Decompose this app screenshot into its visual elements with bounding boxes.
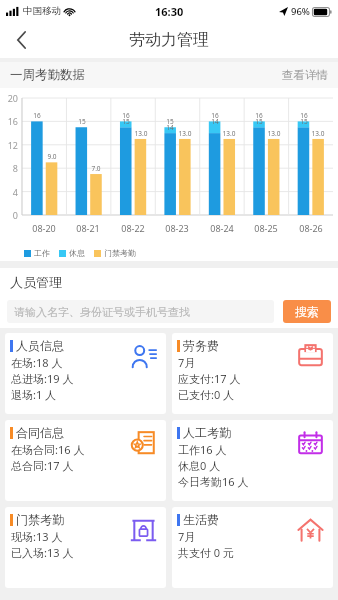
staticText: 中国移动 xyxy=(23,5,61,17)
staticText: 人工考勤 xyxy=(183,425,231,440)
staticText: 应支付:17 人 xyxy=(178,371,241,386)
staticText: 休息 xyxy=(69,248,85,258)
staticText: 搜索 xyxy=(295,304,319,319)
staticText: 08-20 xyxy=(22,222,66,234)
staticText: 生活费 xyxy=(183,512,219,527)
staticText: 7.0 xyxy=(86,164,106,173)
staticText: 16 xyxy=(28,111,46,120)
staticText: 08-22 xyxy=(111,222,155,234)
staticText: 工作 xyxy=(34,248,50,258)
staticText: 16 xyxy=(117,111,135,120)
button[interactable]: 生活费 xyxy=(172,507,333,588)
staticText: 已入场:13 人 xyxy=(11,545,74,560)
staticText: 查看详情 xyxy=(282,68,328,82)
button[interactable]: 劳务费 xyxy=(172,333,333,414)
staticText: 13.0 xyxy=(264,129,284,138)
staticText: 门禁考勤 xyxy=(16,512,64,527)
staticText: 08-26 xyxy=(289,222,333,234)
staticText: 15 xyxy=(73,117,91,126)
staticText: 13.0 xyxy=(308,129,328,138)
staticText: 8 xyxy=(0,162,18,174)
staticText: 一周考勤数据 xyxy=(10,67,85,83)
staticText: 14 xyxy=(161,123,179,132)
staticText: 现场:13 人 xyxy=(11,529,63,544)
staticText: 退场:1 人 xyxy=(11,387,57,402)
staticText: 15 xyxy=(117,117,135,126)
button[interactable]: 人员信息 xyxy=(5,333,166,414)
staticText: 16 xyxy=(295,111,313,120)
button[interactable]: 请输入名字、身份证号或手机号查找 xyxy=(7,300,274,323)
staticText: 15 xyxy=(250,117,268,126)
staticText: 总进场:19 人 xyxy=(11,371,74,386)
staticText: 在场合同:16 人 xyxy=(11,442,85,457)
staticText: 16 xyxy=(0,115,18,127)
button[interactable]: Back xyxy=(0,22,42,58)
staticText: 08-24 xyxy=(200,222,244,234)
staticText: 15 xyxy=(295,117,313,126)
staticText: 门禁考勤 xyxy=(104,248,136,258)
staticText: 劳动力管理 xyxy=(129,30,209,50)
staticText: 在场:18 人 xyxy=(11,355,63,370)
staticText: 共支付 0 元 xyxy=(178,545,235,560)
staticText: 12 xyxy=(0,139,18,151)
staticText: 0 xyxy=(0,209,18,221)
staticText: 13.0 xyxy=(219,129,239,138)
staticText: 14 xyxy=(206,117,224,126)
staticText: 已支付:0 人 xyxy=(178,387,235,402)
staticText: 休息0 人 xyxy=(178,458,221,473)
staticText: 13.0 xyxy=(175,129,195,138)
staticText: 7月 xyxy=(178,529,196,544)
button[interactable]: 搜索 xyxy=(283,300,331,323)
button[interactable]: 查看详情 xyxy=(282,68,328,82)
button[interactable]: 合同信息 xyxy=(5,420,166,501)
staticText: 人员信息 xyxy=(16,338,64,353)
staticText: 总合同:17 人 xyxy=(11,458,74,473)
staticText: 今日考勤16 人 xyxy=(178,474,249,489)
button[interactable]: 人工考勤 xyxy=(172,420,333,501)
staticText: 15 xyxy=(161,117,179,126)
staticText: 劳务费 xyxy=(183,338,219,353)
staticText: 96% xyxy=(291,5,310,18)
staticText: 08-25 xyxy=(244,222,288,234)
staticText: 16 xyxy=(206,111,224,120)
staticText: 16:30 xyxy=(155,4,184,19)
staticText: 20 xyxy=(0,92,18,104)
staticText: 请输入名字、身份证号或手机号查找 xyxy=(14,305,190,319)
staticText: 08-21 xyxy=(66,222,110,234)
staticText: 工作16 人 xyxy=(178,442,227,457)
staticText: 合同信息 xyxy=(16,425,64,440)
button[interactable]: 门禁考勤 xyxy=(5,507,166,588)
staticText: 16 xyxy=(250,111,268,120)
staticText: 人员管理 xyxy=(10,274,62,290)
staticText: 4 xyxy=(0,186,18,198)
staticText: 7月 xyxy=(178,355,196,370)
staticText: 13.0 xyxy=(131,129,151,138)
staticText: 9.0 xyxy=(42,152,62,161)
staticText: 08-23 xyxy=(155,222,199,234)
